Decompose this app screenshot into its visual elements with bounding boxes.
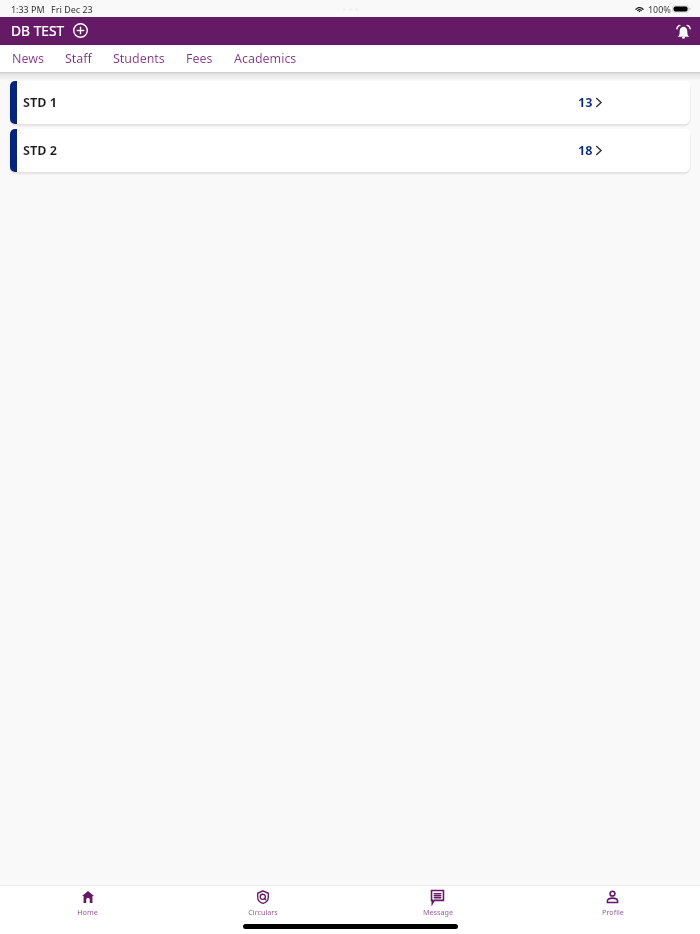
staticText: 13: [578, 94, 593, 111]
staticText: Profile: [602, 907, 624, 917]
staticText: STD 2: [23, 142, 57, 159]
staticText: STD 1: [23, 94, 57, 111]
staticText: 1:33 PM: [11, 3, 45, 15]
staticText: Students: [113, 50, 165, 67]
staticText: 100%: [648, 3, 671, 15]
button[interactable]: Notifications: [672, 21, 694, 43]
button[interactable]: Home: [0, 890, 175, 917]
staticText: Academics: [234, 50, 297, 67]
staticText: Staff: [65, 50, 92, 67]
button[interactable]: STD 2: [10, 129, 690, 172]
staticText: Fees: [186, 50, 213, 67]
staticText: Fri Dec 23: [51, 3, 93, 15]
button[interactable]: Students: [113, 50, 186, 67]
button[interactable]: Staff: [65, 50, 113, 67]
button[interactable]: Profile: [525, 890, 700, 917]
button[interactable]: Message: [350, 890, 525, 917]
staticText: News: [12, 50, 44, 67]
button[interactable]: Circulars: [175, 890, 350, 917]
staticText: Circulars: [248, 907, 278, 917]
staticText: 18: [578, 142, 593, 159]
staticText: DB TEST: [11, 21, 65, 40]
button[interactable]: Fees: [186, 50, 234, 67]
staticText: Home: [77, 907, 98, 917]
staticText: Message: [423, 907, 453, 917]
button[interactable]: News: [12, 50, 65, 67]
button[interactable]: Academics: [234, 50, 318, 67]
button[interactable]: Add: [70, 20, 90, 40]
button[interactable]: STD 1: [10, 81, 690, 124]
